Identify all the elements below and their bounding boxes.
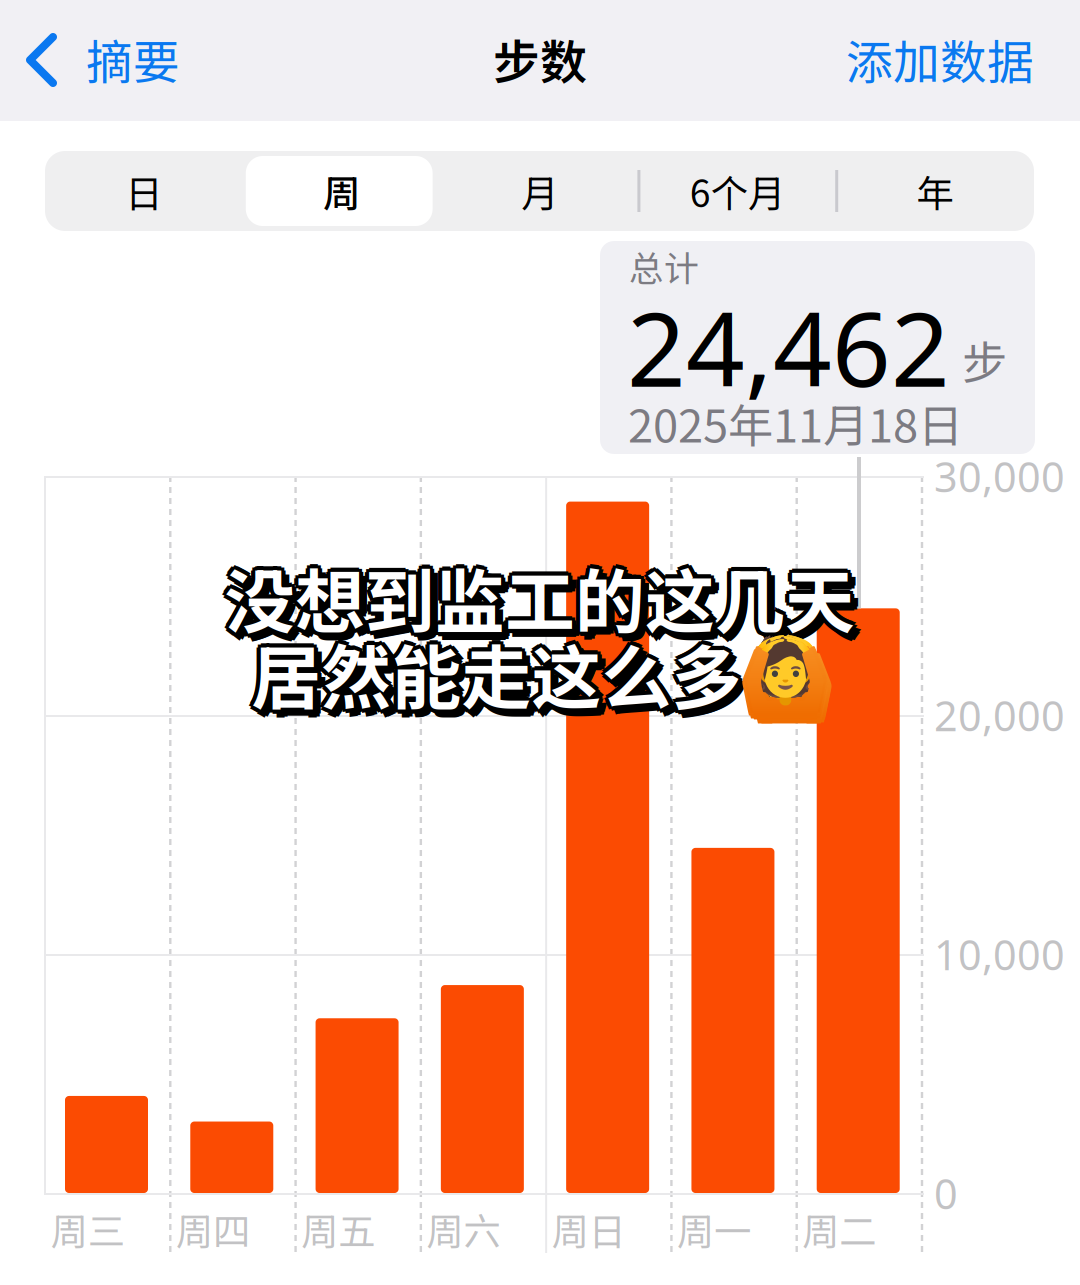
staticText: 没想到监工的这几天 [229, 547, 859, 648]
staticText: 步 [962, 327, 1007, 393]
button[interactable]: 周日 [0, 0, 125, 717]
staticText: 总计 [629, 241, 699, 291]
button[interactable]: 周二 [0, 0, 125, 717]
staticText: 摘要 [86, 25, 180, 93]
staticText: 2025年11月18日 [628, 390, 963, 456]
staticText: 周 [323, 164, 360, 218]
button[interactable]: 添加数据 [0, 0, 200, 74]
button[interactable]: 摘要 [0, 0, 158, 74]
staticText: 没想到监工的这几天 [222, 550, 852, 651]
button[interactable]: 年 [0, 0, 198, 80]
staticText: 没想到监工的这几天 [225, 547, 855, 648]
staticText: 居然能走这么多🙆 [254, 626, 831, 727]
staticText: 没想到监工的这几天 [228, 550, 858, 651]
staticText: 周五 [301, 1202, 375, 1256]
staticText: 没想到监工的这几天 [229, 555, 859, 656]
staticText: 24,462 [627, 277, 950, 417]
staticText: 没想到监工的这几天 [225, 542, 855, 643]
staticText: 没想到监工的这几天 [222, 544, 852, 645]
button[interactable]: 周四 [0, 0, 125, 717]
staticText: 没想到监工的这几天 [233, 551, 863, 652]
staticText: 周四 [176, 1202, 250, 1256]
staticText: 周二 [802, 1202, 876, 1256]
staticText: 居然能走这么多🙆 [251, 627, 828, 728]
button[interactable]: 日 [0, 0, 198, 80]
staticText: 居然能走这么多🙆 [259, 627, 836, 728]
staticText: 步数 [493, 25, 587, 93]
staticText: 日 [125, 164, 162, 218]
staticText: 6个月 [690, 164, 785, 218]
staticText: 居然能走这么多🙆 [251, 623, 828, 724]
staticText: 10,000 [934, 926, 1065, 982]
staticText: 居然能走这么多🙆 [248, 620, 825, 721]
staticText: 没想到监工的这几天 [225, 551, 855, 652]
staticText: 周一 [677, 1202, 751, 1256]
staticText: 居然能走这么多🙆 [255, 631, 832, 732]
button[interactable]: 月 [0, 0, 198, 80]
button[interactable]: 6个月 [0, 0, 198, 80]
staticText: 周三 [51, 1202, 125, 1256]
staticText: 居然能走这么多🙆 [256, 623, 833, 724]
staticText: 居然能走这么多🙆 [251, 618, 828, 719]
staticText: 月 [521, 164, 558, 218]
staticText: 年 [917, 164, 954, 218]
button[interactable]: 周六 [0, 0, 125, 717]
staticText: 居然能走这么多🙆 [248, 626, 825, 727]
button[interactable]: 周三 [0, 0, 125, 717]
staticText: 周日 [552, 1202, 626, 1256]
staticText: 0 [934, 1165, 958, 1221]
staticText: 周六 [426, 1202, 500, 1256]
staticText: 没想到监工的这几天 [221, 547, 851, 648]
staticText: 没想到监工的这几天 [232, 554, 862, 655]
button[interactable]: 周一 [0, 0, 125, 717]
staticText: 没想到监工的这几天 [228, 544, 858, 645]
staticText: 添加数据 [846, 25, 1034, 93]
staticText: 居然能走这么多🙆 [254, 620, 831, 721]
staticText: 居然能走这么多🙆 [258, 630, 835, 731]
staticText: 30,000 [934, 448, 1065, 504]
staticText: 20,000 [934, 687, 1065, 743]
button[interactable]: 周五 [0, 0, 125, 717]
button[interactable]: 周 [0, 0, 198, 80]
staticText: 居然能走这么多🙆 [247, 623, 824, 724]
